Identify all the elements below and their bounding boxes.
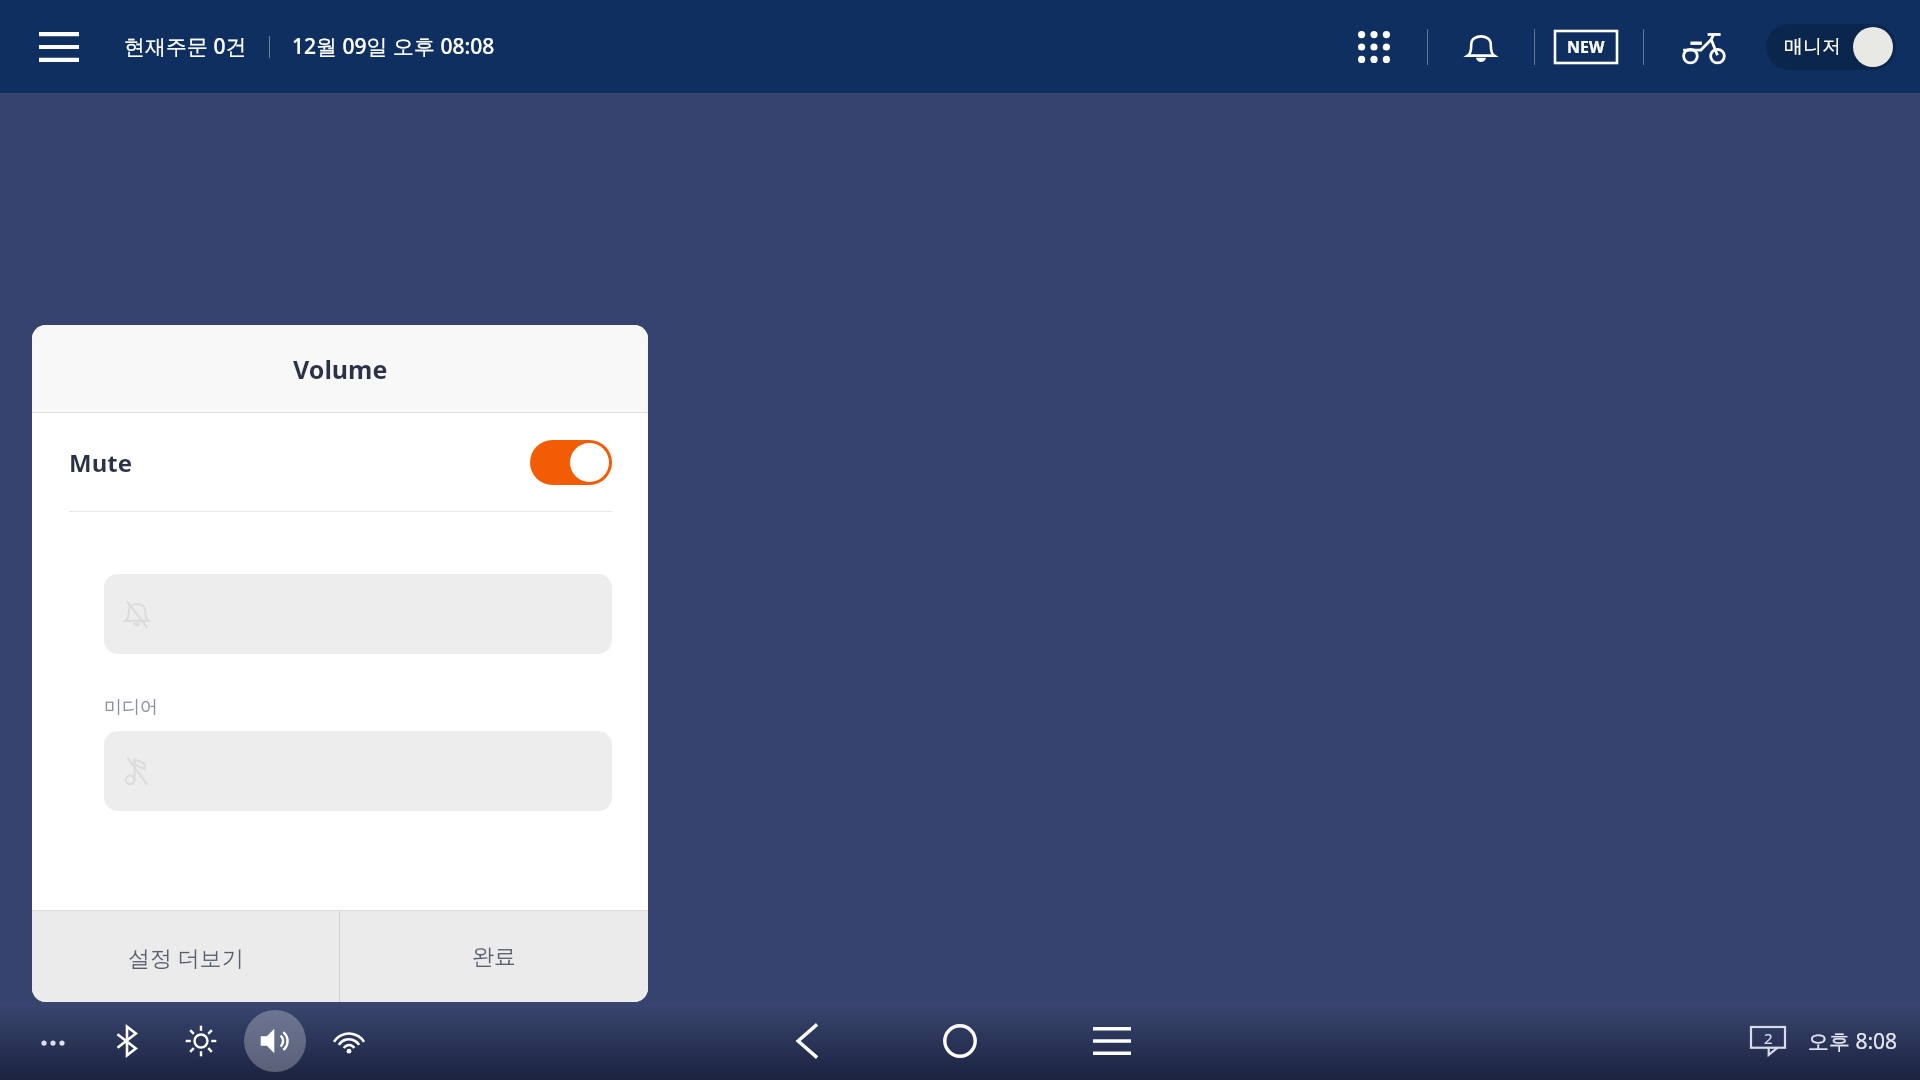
button[interactable]: More: [22, 1010, 84, 1072]
button[interactable]: Mute toggle: [530, 440, 612, 485]
button[interactable]: Notifications count 2: [1742, 1021, 1794, 1061]
staticText: 2: [1764, 1028, 1773, 1048]
staticText: NEW: [1567, 36, 1605, 58]
button[interactable]: Brightness: [170, 1010, 232, 1072]
button[interactable]: Mute: [32, 413, 648, 511]
button[interactable]: 매니저: [1766, 24, 1896, 70]
button[interactable]: Volume: [244, 1010, 306, 1072]
button[interactable]: Recents: [1066, 1002, 1158, 1080]
button[interactable]: Wi-Fi: [318, 1010, 380, 1072]
button[interactable]: Bluetooth: [96, 1010, 158, 1072]
staticText: 완료: [472, 943, 516, 971]
button[interactable]: Home: [914, 1002, 1006, 1080]
staticText: 현재주문 0건: [124, 32, 247, 61]
staticText: 12월 09일 오후 08:08: [292, 32, 495, 61]
button[interactable]: 설정 더보기: [32, 911, 339, 1002]
button[interactable]: New: [1555, 31, 1617, 63]
button[interactable]: Delivery: [1670, 12, 1740, 82]
staticText: 미디어: [104, 696, 158, 719]
staticText: Volume: [293, 352, 388, 386]
staticText: 설정 더보기: [128, 942, 244, 972]
button[interactable]: Menu: [28, 16, 90, 78]
button[interactable]: Apps: [1341, 14, 1407, 80]
staticText: Mute: [69, 446, 132, 479]
staticText: 매니저: [1784, 35, 1841, 59]
button[interactable]: Back: [762, 1002, 854, 1080]
button[interactable]: Notifications: [1448, 14, 1514, 80]
button[interactable]: 완료: [340, 911, 648, 1002]
staticText: 오후 8:08: [1808, 1027, 1898, 1056]
